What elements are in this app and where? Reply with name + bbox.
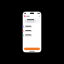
button[interactable] [21, 29, 42, 33]
button[interactable]: Profile [24, 15, 26, 17]
button[interactable] [21, 33, 42, 38]
button[interactable]: Continue [23, 48, 41, 50]
button[interactable] [21, 24, 42, 29]
